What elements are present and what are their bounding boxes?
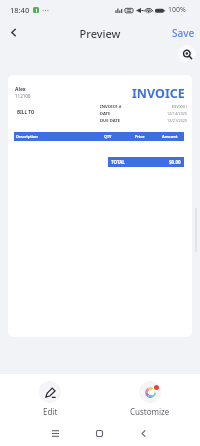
staticText: $0.00 <box>169 159 181 165</box>
staticText: BILL TO <box>17 109 35 115</box>
staticText: INVOICE # <box>100 104 122 110</box>
staticText: INV0001 <box>172 104 188 109</box>
staticText: TOTAL <box>111 159 125 165</box>
staticText: Customize <box>130 406 170 417</box>
staticText: 112100 <box>15 93 31 99</box>
staticText: Description <box>16 134 38 139</box>
button[interactable]: Home <box>89 423 109 443</box>
button[interactable]: Edit <box>25 374 75 417</box>
button[interactable]: Save <box>170 26 197 40</box>
staticText: 18:40 <box>10 5 30 15</box>
staticText: INVOICE <box>132 85 185 102</box>
staticText: 100% <box>168 5 186 15</box>
staticText: Edit <box>43 406 58 417</box>
button[interactable]: Recent apps <box>45 423 65 443</box>
staticText: Amount <box>162 134 178 139</box>
button[interactable]: Back <box>0 19 26 45</box>
staticText: DUE DATE <box>100 118 121 124</box>
button[interactable]: Back <box>133 423 153 443</box>
staticText: Price <box>135 134 145 139</box>
staticText: Alex <box>15 86 26 93</box>
staticText: DATE <box>100 111 111 117</box>
button[interactable]: Zoom <box>178 45 196 63</box>
staticText: QTY <box>104 134 112 139</box>
staticText: Preview <box>0 26 200 41</box>
staticText: 12/21/2025 <box>167 118 188 123</box>
staticText: Save <box>172 26 195 40</box>
button[interactable]: Customize <box>125 374 175 417</box>
staticText: 12/14/2025 <box>167 111 188 116</box>
